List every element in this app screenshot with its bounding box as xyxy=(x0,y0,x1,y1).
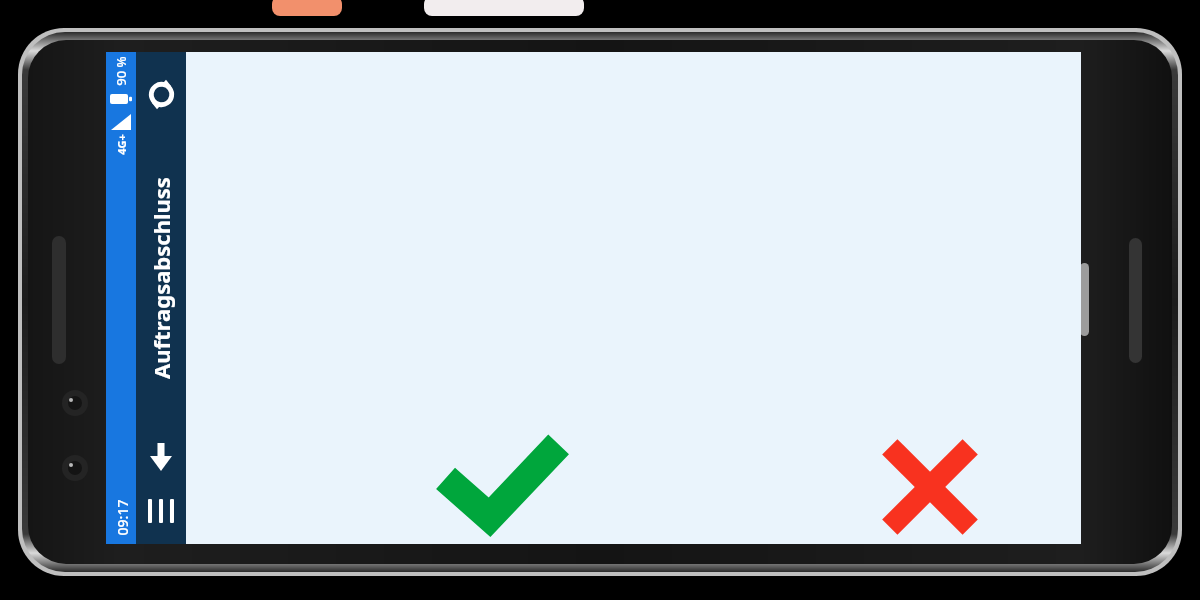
button[interactable]: Abbrechen xyxy=(886,443,974,531)
button[interactable]: Synchronisieren xyxy=(139,72,183,116)
button[interactable]: Auftrag abschließen xyxy=(450,440,554,532)
staticText: 09:17 xyxy=(112,499,131,535)
staticText: Auftragsabschluss xyxy=(146,177,176,379)
staticText: 90 % xyxy=(112,56,130,86)
button[interactable]: Zurück xyxy=(140,436,182,478)
staticText: 4G+ xyxy=(114,134,129,155)
button[interactable]: Menü xyxy=(140,490,182,532)
